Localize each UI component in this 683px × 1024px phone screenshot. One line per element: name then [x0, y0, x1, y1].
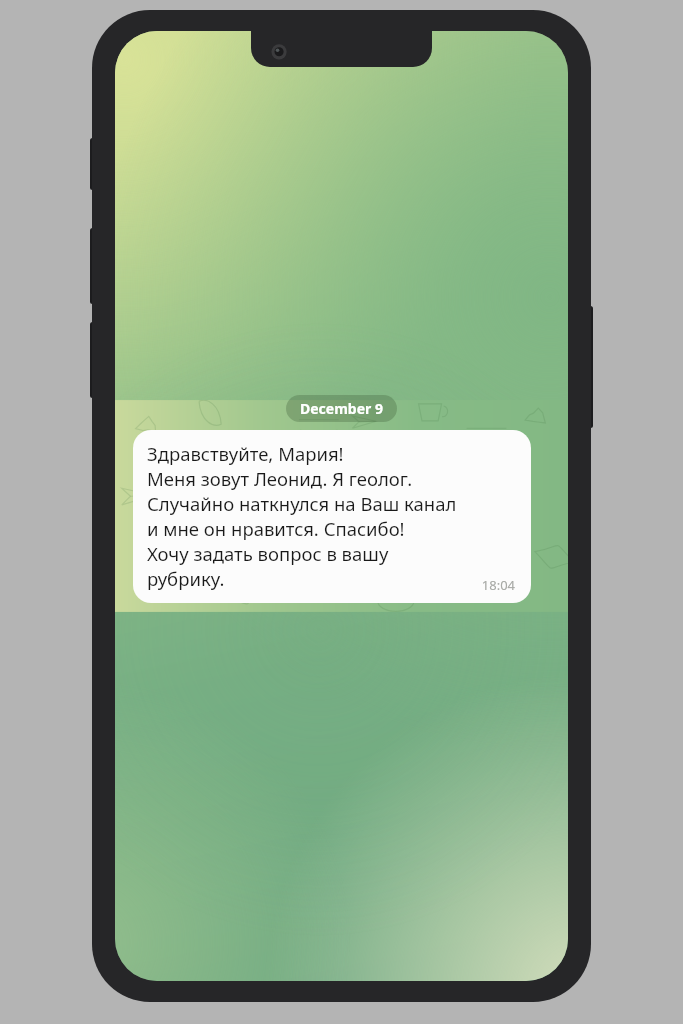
staticText: Хочу задать вопрос в вашу [147, 541, 389, 566]
staticText: December 9 [300, 399, 383, 418]
staticText: Здравствуйте, Мария! [147, 441, 344, 466]
staticText: и мне он нравится. Спасибо! [147, 516, 405, 541]
staticText: 18:04 [481, 576, 515, 594]
staticText: рубрику. [147, 566, 225, 591]
staticText: Меня зовут Леонид. Я геолог. [147, 466, 413, 491]
button[interactable]: December 9 [286, 395, 397, 422]
button[interactable]: Здравствуйте, Мария! [133, 430, 531, 603]
staticText: Случайно наткнулся на Ваш канал [147, 491, 457, 516]
